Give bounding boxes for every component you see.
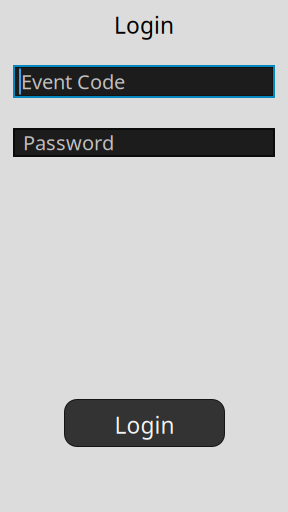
button[interactable]: Login bbox=[64, 399, 225, 447]
button[interactable]: Event Code bbox=[14, 66, 274, 97]
staticText: Login bbox=[114, 10, 174, 40]
button[interactable]: Password bbox=[14, 129, 274, 156]
staticText: Password bbox=[23, 129, 114, 156]
staticText: Login bbox=[114, 410, 174, 440]
staticText: Event Code bbox=[21, 68, 125, 95]
